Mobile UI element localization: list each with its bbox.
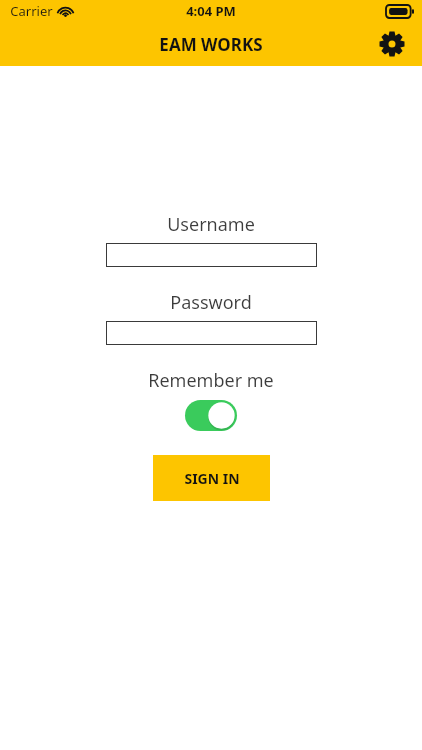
button[interactable]: Username input (106, 243, 317, 267)
button[interactable]: Password input (106, 321, 317, 345)
staticText: Password (170, 290, 252, 315)
button[interactable]: SIGN IN (153, 455, 270, 501)
staticText: Remember me (148, 368, 274, 393)
staticText: Carrier (10, 2, 53, 20)
staticText: EAM WORKS (159, 33, 263, 56)
button[interactable]: Remember me toggle, on (185, 400, 237, 431)
staticText: Username (167, 212, 255, 237)
staticText: SIGN IN (184, 469, 240, 488)
button[interactable]: Settings (374, 26, 410, 62)
staticText: 4:04 PM (186, 2, 236, 20)
